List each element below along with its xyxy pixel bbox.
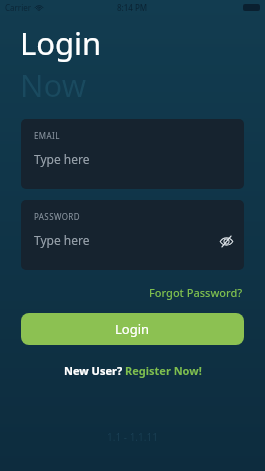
staticText: New User? [64, 363, 125, 378]
staticText: EMAIL [34, 130, 60, 141]
staticText: Forgot Password? [149, 285, 243, 300]
button[interactable]: EMAIL [21, 119, 244, 189]
button[interactable]: Register Now! [125, 363, 202, 378]
staticText: Now [20, 64, 87, 106]
staticText: Type here [34, 232, 90, 248]
button[interactable]: Forgot Password? [147, 283, 245, 302]
staticText: Login [20, 22, 102, 64]
button[interactable]: Show password [213, 228, 239, 254]
button[interactable]: PASSWORD [21, 200, 244, 270]
staticText: Carrier [5, 2, 32, 13]
staticText: Register Now! [125, 363, 202, 378]
staticText: Login [115, 320, 150, 338]
button[interactable]: Login [21, 313, 244, 345]
staticText: PASSWORD [34, 211, 80, 222]
staticText: Type here [34, 151, 90, 167]
staticText: 8:14 PM [117, 2, 148, 13]
